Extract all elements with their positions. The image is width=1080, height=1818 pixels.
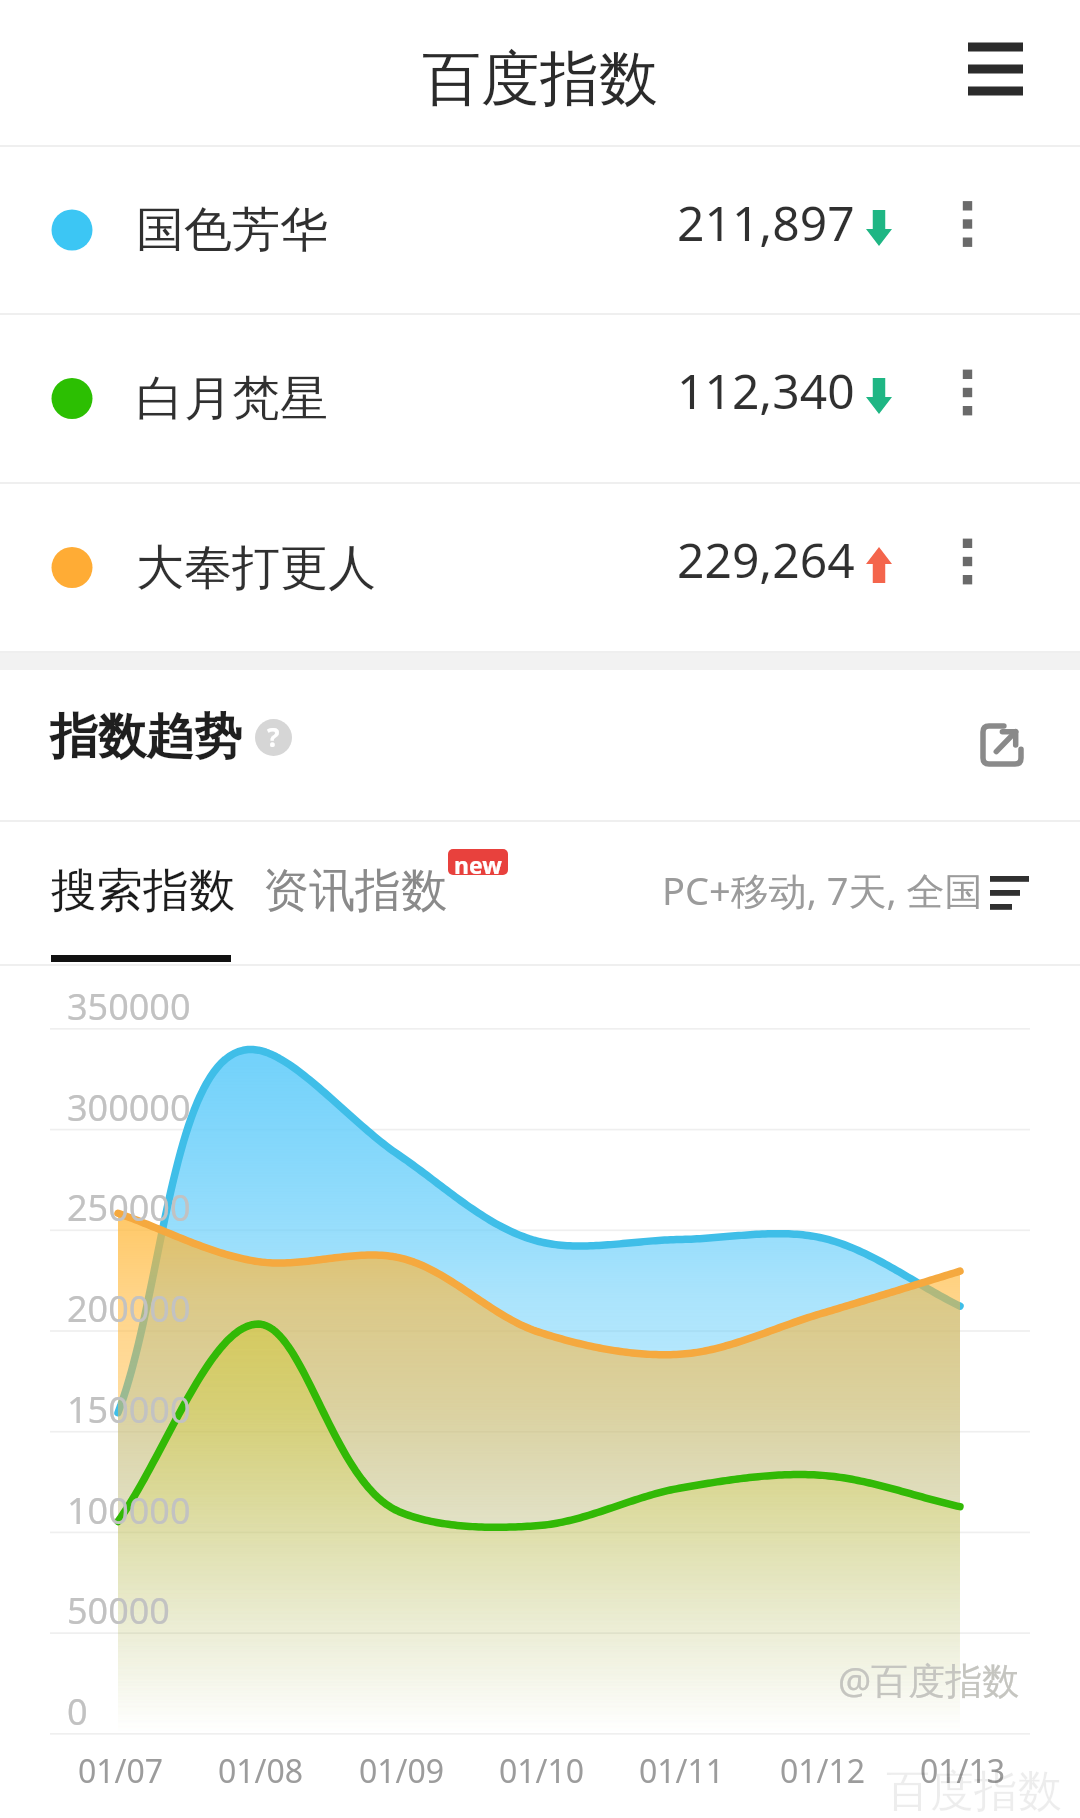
staticText: new: [454, 849, 502, 875]
staticText: 150000: [67, 1385, 191, 1434]
staticText: 百度指数: [886, 1764, 1062, 1818]
button[interactable]: 国色芳华: [0, 147, 1080, 313]
button[interactable]: 白月梵星: [0, 315, 1080, 482]
button[interactable]: 大奉打更人: [0, 484, 1080, 651]
staticText: 百度指数: [422, 42, 658, 116]
staticText: PC+移动, 7天, 全国: [662, 864, 983, 916]
staticText: 01/07: [78, 1749, 164, 1793]
button[interactable]: 搜索指数: [20, 822, 263, 964]
staticText: ?: [267, 719, 280, 754]
staticText: 200000: [67, 1284, 191, 1333]
staticText: 211,897: [677, 190, 855, 255]
staticText: 01/11: [639, 1749, 725, 1793]
button[interactable]: Help: [255, 719, 292, 756]
staticText: 01/12: [780, 1749, 866, 1793]
staticText: 01/08: [218, 1749, 304, 1793]
staticText: 250000: [67, 1183, 191, 1232]
staticText: @百度指数: [838, 1654, 1020, 1705]
button[interactable]: PC+移动, 7天, 全国: [662, 864, 1030, 916]
button[interactable]: Open in new window: [970, 670, 1080, 820]
staticText: 350000: [67, 982, 191, 1031]
staticText: 50000: [67, 1586, 170, 1635]
staticText: 01/13: [920, 1749, 1006, 1793]
staticText: 300000: [67, 1083, 191, 1132]
staticText: 01/10: [499, 1749, 585, 1793]
button[interactable]: Menu: [968, 0, 1080, 145]
staticText: 搜索指数: [51, 862, 235, 920]
staticText: 01/09: [359, 1749, 445, 1793]
staticText: 指数趋势: [50, 707, 242, 767]
button[interactable]: More options: [940, 315, 1080, 482]
staticText: 229,264: [677, 527, 855, 592]
staticText: 国色芳华: [136, 200, 328, 260]
staticText: 112,340: [677, 358, 855, 423]
staticText: 大奉打更人: [136, 538, 376, 598]
button[interactable]: 资讯指数: [263, 822, 473, 964]
button[interactable]: More options: [940, 484, 1080, 651]
staticText: 0: [67, 1687, 88, 1736]
staticText: 资讯指数: [263, 862, 447, 920]
button[interactable]: More options: [940, 147, 1080, 313]
staticText: 白月梵星: [136, 369, 328, 429]
staticText: 100000: [67, 1486, 191, 1535]
